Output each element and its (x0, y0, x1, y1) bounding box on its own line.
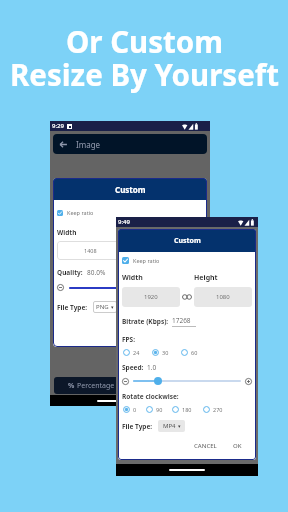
staticText: % (68, 381, 75, 391)
staticText: Height (194, 273, 218, 283)
staticText: ▾ (111, 304, 114, 310)
staticText: Bitrate (Kbps): (122, 317, 169, 326)
staticText: Keep ratio (133, 257, 160, 264)
staticText: 1920 (144, 293, 158, 301)
staticText: Custom (174, 236, 201, 246)
button[interactable]: 0 (123, 406, 137, 413)
other: Link (125, 248, 135, 254)
staticText: Custom (115, 184, 146, 195)
staticText: 9:49 (118, 218, 130, 226)
button[interactable]: Back (53, 134, 207, 154)
staticText: 1408 (84, 247, 97, 254)
staticText: CANCEL (194, 442, 217, 450)
staticText: Height (137, 228, 159, 237)
staticText: Custom (156, 381, 182, 391)
button[interactable]: 1080 (194, 287, 252, 307)
staticText: 60 (191, 349, 198, 356)
staticText: 24 (133, 349, 140, 356)
staticText: 80.0% (87, 268, 106, 277)
button[interactable]: Keep ratio (57, 209, 94, 216)
staticText: MP4 (163, 422, 176, 430)
button[interactable]: Keep ratio (122, 257, 160, 264)
staticText: Keep ratio (67, 209, 94, 216)
button[interactable]: 90 (146, 406, 163, 413)
staticText: PNG (96, 303, 109, 311)
staticText: Quality: (57, 268, 83, 277)
staticText: FPS: (122, 335, 136, 344)
staticText: 30 (162, 349, 169, 356)
staticText: 1056 (164, 247, 177, 254)
button[interactable]: Custom (131, 377, 206, 394)
staticText: 180 (182, 406, 192, 413)
other: Back (59, 140, 68, 149)
staticText: 270 (213, 406, 223, 413)
other: Decrease quality (57, 284, 64, 291)
button[interactable]: CANCEL (191, 440, 220, 452)
staticText: Or Custom Resize By Yourseft (10, 21, 279, 95)
staticText: 0 (133, 406, 137, 413)
staticText: 17268 (172, 316, 191, 325)
other: Link (182, 294, 192, 300)
staticText: OK (233, 442, 242, 450)
staticText: 1080 (216, 293, 230, 301)
staticText: 9:29 (52, 122, 64, 130)
staticText: File Type: (122, 422, 153, 431)
staticText: Percentage (77, 381, 115, 391)
button[interactable]: 270 (203, 406, 223, 413)
button[interactable]: 24 (123, 349, 140, 356)
other: Decrease speed (122, 378, 129, 385)
button[interactable]: % (54, 377, 128, 394)
button[interactable]: 1056 (137, 241, 203, 260)
button[interactable]: MP4 (158, 420, 185, 432)
button[interactable]: 1408 (57, 241, 123, 260)
staticText: ▾ (178, 423, 181, 429)
staticText: Rotate clockwise: (122, 392, 179, 401)
staticText: Speed: (122, 363, 144, 372)
button[interactable]: 180 (172, 406, 192, 413)
staticText: 90 (156, 406, 163, 413)
staticText: Image (76, 139, 101, 150)
button[interactable]: PNG (93, 301, 117, 313)
button[interactable]: 60 (181, 349, 198, 356)
button[interactable]: 1920 (122, 287, 180, 307)
staticText: File Type: (57, 303, 88, 312)
staticText: Width (122, 273, 143, 283)
button[interactable]: OK (230, 440, 245, 452)
button[interactable]: 30 (152, 349, 169, 356)
other: Increase speed (245, 378, 252, 385)
staticText: 1.0 (147, 363, 157, 372)
staticText: Width (57, 228, 77, 237)
